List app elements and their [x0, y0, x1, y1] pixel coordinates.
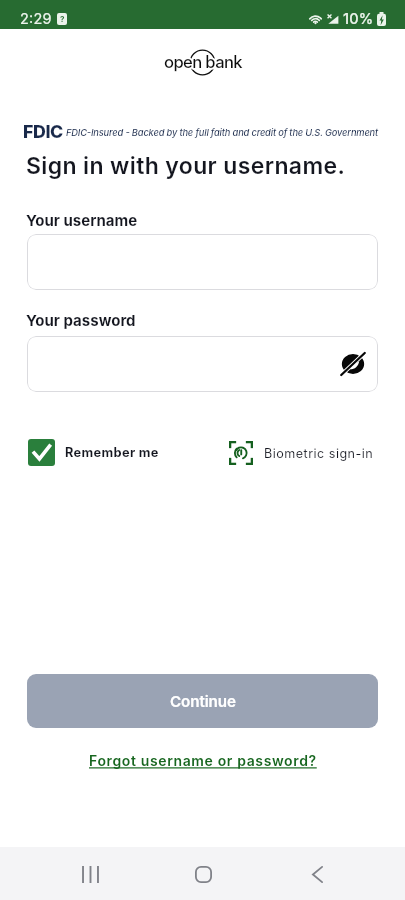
staticText: FDIC — [23, 121, 63, 141]
staticText: Sign in with your username. — [26, 152, 346, 180]
button[interactable]: Back — [293, 850, 341, 898]
staticText: open bank — [164, 52, 242, 72]
button[interactable]: Show password — [338, 349, 368, 379]
staticText: FDIC-Insured - Backed by the full faith … — [66, 127, 379, 138]
staticText: open bank — [164, 52, 242, 72]
staticText: Remember me — [65, 445, 159, 460]
button[interactable]: Continue — [27, 674, 378, 728]
staticText: Continue — [170, 692, 236, 710]
staticText: Biometric sign-in — [264, 446, 374, 461]
button[interactable]: Remember me — [28, 439, 159, 466]
button[interactable]: Biometric sign-in — [229, 441, 374, 465]
staticText: Your password — [26, 311, 136, 329]
staticText: 2:29 — [20, 10, 52, 28]
button[interactable]: Home — [179, 850, 227, 898]
button[interactable]: Recent apps — [66, 850, 114, 898]
button[interactable]: Show password — [27, 336, 378, 392]
staticText: 10% — [343, 10, 374, 28]
button[interactable]: Forgot username or password? — [89, 752, 317, 769]
staticText: ? — [60, 14, 65, 24]
staticText: Your username — [26, 211, 138, 229]
button[interactable] — [27, 234, 378, 290]
